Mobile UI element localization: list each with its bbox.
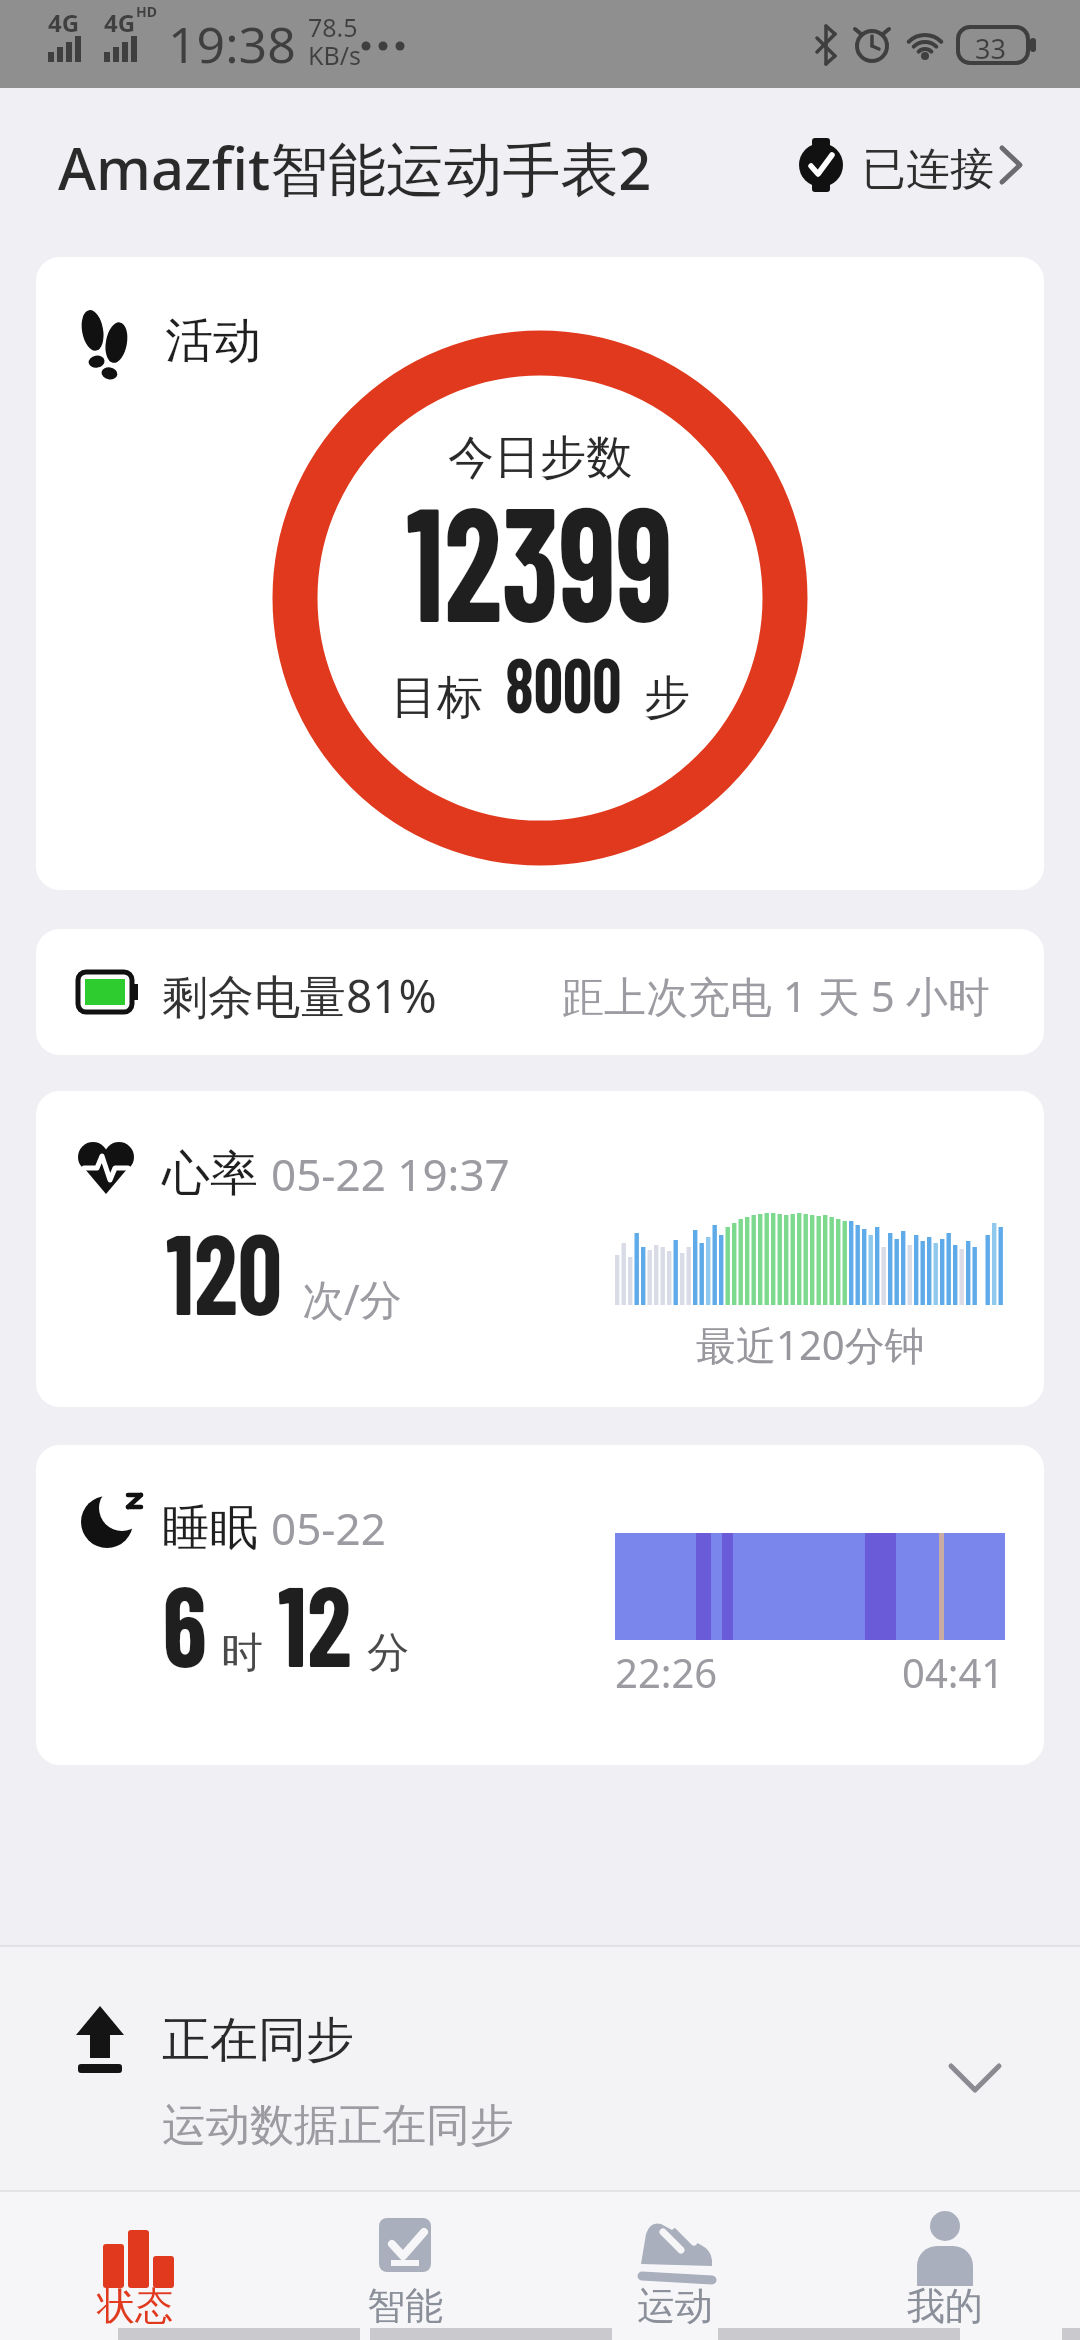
staticText: 4G <box>104 6 136 39</box>
staticText: HD <box>136 2 157 21</box>
staticText: 睡眠 <box>162 1493 271 1559</box>
staticText: 状态 <box>97 2282 173 2330</box>
staticText: 4G <box>48 6 80 39</box>
staticText: 05-22 19:37 <box>271 1144 510 1204</box>
staticText: 12399 <box>406 462 674 654</box>
staticText: 心率 <box>162 1139 271 1205</box>
button[interactable]: Amazfit智能运动手表2 <box>0 88 1080 257</box>
staticText: 时 <box>210 1622 274 1679</box>
staticText: 正在同步 <box>162 2010 354 2070</box>
staticText: 12 <box>278 1555 352 1689</box>
staticText: Amazfit智能运动手表2 <box>58 128 652 207</box>
button[interactable]: 状态 <box>0 2190 270 2340</box>
staticText: 04:41 <box>902 1645 1005 1699</box>
staticText: 活动 <box>165 311 261 371</box>
staticText: 距上次充电 1 天 5 小时 <box>562 967 990 1024</box>
staticText: 120 <box>166 1203 283 1337</box>
staticText: 运动数据正在同步 <box>162 2098 514 2153</box>
staticText: 分 <box>356 1622 409 1679</box>
staticText: 最近120分钟 <box>696 1317 925 1372</box>
button[interactable]: 正在同步 <box>0 1945 1080 2190</box>
staticText: KB/s <box>308 38 362 72</box>
button[interactable]: 心率 <box>36 1091 1044 1407</box>
staticText: 智能 <box>367 2282 443 2330</box>
staticText: 8000 <box>505 637 622 728</box>
staticText: 次/分 <box>291 1270 402 1327</box>
button[interactable]: 剩余电量81% <box>36 929 1044 1055</box>
staticText: 我的 <box>907 2282 983 2330</box>
button[interactable]: 睡眠 <box>36 1445 1044 1765</box>
staticText: 19:38 <box>168 10 296 78</box>
staticText: 剩余电量81% <box>162 964 437 1027</box>
staticText: 运动 <box>637 2282 713 2330</box>
staticText: 78.5 <box>308 10 358 44</box>
staticText: 已连接 <box>862 142 994 197</box>
button[interactable]: 运动 <box>540 2190 810 2340</box>
staticText: 目标 <box>391 664 495 727</box>
staticText: 步 <box>632 664 690 727</box>
button[interactable]: 智能 <box>270 2190 540 2340</box>
button[interactable]: 活动 <box>36 257 1044 890</box>
staticText: 22:26 <box>615 1645 718 1699</box>
staticText: 33 <box>975 30 1006 67</box>
staticText: 6 <box>162 1555 207 1689</box>
staticText: 今日步数 <box>448 429 632 487</box>
staticText: 05-22 <box>271 1498 386 1558</box>
button[interactable]: 我的 <box>810 2190 1080 2340</box>
